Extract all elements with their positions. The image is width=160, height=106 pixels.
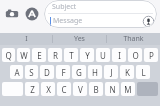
staticText: H [92,67,98,78]
staticText: R [53,50,58,61]
button[interactable]: Y [80,48,94,62]
button[interactable]: I [0,33,52,45]
staticText: Z [30,84,35,95]
staticText: N [109,84,116,95]
button[interactable]: Subject [44,0,157,28]
staticText: O [132,50,139,61]
button[interactable]: G [72,65,86,79]
button[interactable]: K [120,65,134,79]
button[interactable]: W [17,48,30,62]
button[interactable]: O [128,48,142,62]
button[interactable]: C [57,82,71,96]
button[interactable]: T [64,48,78,62]
staticText: L [141,67,146,78]
button[interactable]: P [144,48,158,62]
button[interactable]: Yes [53,33,106,45]
staticText: K [125,67,130,78]
button[interactable] [2,82,23,96]
button[interactable]: Voice input [143,16,154,27]
staticText: W [20,50,28,61]
staticText: Y [85,50,90,61]
staticText: A [14,67,20,78]
button[interactable]: Z [25,82,39,96]
staticText: B [93,84,99,95]
staticText: F [61,67,66,78]
button[interactable]: B [89,82,103,96]
staticText: E [37,50,42,61]
button[interactable]: F [56,65,70,79]
staticText: I [118,50,121,61]
button[interactable]: Camera [3,5,21,23]
staticText: G [76,67,82,78]
staticText: S [29,67,34,78]
staticText: X [46,84,51,95]
staticText: C [61,84,67,95]
button[interactable]: V [73,82,87,96]
button[interactable]: E [32,48,46,62]
button[interactable]: J [104,65,118,79]
staticText: P [149,50,154,61]
button[interactable]: N [105,82,119,96]
staticText: Q [5,50,12,61]
button[interactable]: X [41,82,55,96]
button[interactable]: A [10,65,23,79]
staticText: Subject [52,2,77,12]
staticText: T [69,50,74,61]
button[interactable]: Apps [23,5,41,23]
button[interactable]: L [136,65,150,79]
button[interactable]: Thank [107,33,160,45]
staticText: D [44,67,50,78]
staticText: V [78,84,83,95]
button[interactable]: H [88,65,102,79]
button[interactable]: D [40,65,54,79]
staticText: I [25,34,28,44]
button[interactable]: R [48,48,62,62]
staticText: Message [53,16,83,26]
button[interactable]: Q [2,48,15,62]
staticText: Yes [74,34,85,44]
button[interactable]: I [112,48,126,62]
staticText: Thank [123,34,144,44]
staticText: J [110,67,113,78]
staticText: U [100,50,106,61]
button[interactable]: M [121,82,135,96]
button[interactable]: S [25,65,38,79]
staticText: M [124,84,132,95]
button[interactable]: U [96,48,110,62]
